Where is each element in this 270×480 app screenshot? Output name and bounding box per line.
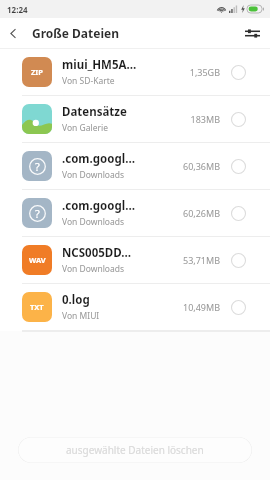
button[interactable]: Auswählen — [228, 156, 248, 176]
button[interactable]: ausgewählte Dateien löschen — [18, 437, 252, 463]
button[interactable]: Datensätze — [0, 96, 270, 143]
button[interactable]: Auswählen — [228, 109, 248, 129]
button[interactable]: ? — [0, 190, 270, 237]
staticText: ? — [35, 159, 40, 174]
staticText: Von Galerie — [62, 122, 108, 134]
button[interactable]: Auswählen — [228, 203, 248, 223]
staticText: .com.googl… — [62, 198, 135, 214]
button[interactable]: TXT — [0, 284, 270, 331]
button[interactable]: Sortieren — [239, 20, 265, 46]
staticText: .com.googl… — [62, 151, 135, 167]
button[interactable]: Auswählen — [228, 297, 248, 317]
staticText: 53,71MB — [172, 254, 220, 266]
staticText: 1,35GB — [172, 66, 220, 78]
button[interactable]: ZIP — [0, 49, 270, 96]
staticText: Von Downloads — [62, 263, 125, 275]
staticText: WAV — [29, 255, 46, 265]
staticText: NCS005DD… — [62, 245, 132, 261]
button[interactable]: Auswählen — [228, 250, 248, 270]
staticText: ausgewählte Dateien löschen — [66, 443, 204, 457]
button[interactable]: WAV — [0, 237, 270, 284]
staticText: 0.log — [62, 292, 90, 308]
staticText: ZIP — [31, 67, 43, 77]
staticText: Datensätze — [62, 104, 127, 120]
button[interactable]: Auswählen — [228, 62, 248, 82]
staticText: Von Downloads — [62, 216, 125, 228]
staticText: Von MIUI — [62, 310, 100, 322]
staticText: 10,49MB — [172, 301, 220, 313]
staticText: Von Downloads — [62, 169, 125, 181]
staticText: 12:24 — [7, 4, 28, 15]
staticText: Große Dateien — [32, 25, 119, 41]
button[interactable]: Zurück — [0, 20, 26, 46]
staticText: Von SD-Karte — [62, 75, 115, 87]
staticText: 183MB — [172, 113, 220, 125]
staticText: miui_HM5A… — [62, 57, 137, 73]
staticText: 60,36MB — [172, 160, 220, 172]
button[interactable]: ? — [0, 143, 270, 190]
staticText: TXT — [30, 302, 44, 312]
staticText: ? — [35, 206, 40, 221]
staticText: 60,26MB — [172, 207, 220, 219]
